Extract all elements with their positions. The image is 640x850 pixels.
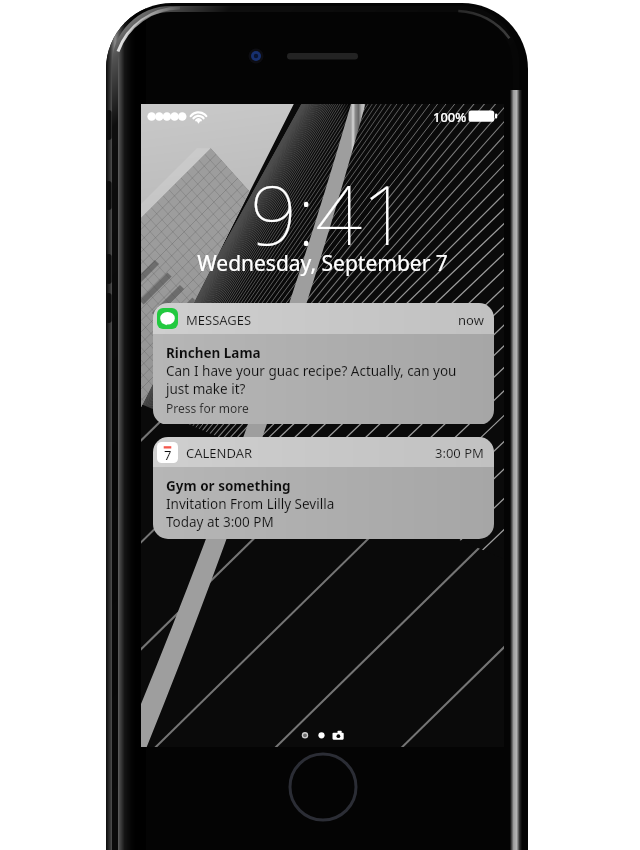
staticText: Invitation From Lilly Sevilla — [166, 495, 335, 513]
staticText: Rinchen Lama — [166, 344, 261, 362]
staticText: MESSAGES — [186, 311, 252, 329]
staticText: Today at 3:00 PM — [166, 513, 274, 531]
staticText: 3:00 PM — [435, 444, 484, 462]
staticText: now — [458, 311, 484, 329]
staticText: Can I have your guac recipe? Actually, c… — [166, 362, 457, 380]
staticText: 7 — [164, 446, 172, 464]
staticText: 100% — [433, 108, 467, 126]
staticText: CALENDAR — [186, 444, 253, 462]
staticText: Press for more — [166, 400, 249, 416]
staticText: Wednesday, September 7 — [141, 249, 504, 278]
button[interactable]: 7 — [153, 437, 494, 539]
staticText: 9:41 — [148, 157, 504, 269]
button[interactable]: MESSAGES — [153, 303, 494, 425]
staticText: Gym or something — [166, 477, 291, 495]
button[interactable]: Camera — [332, 728, 345, 743]
staticText: just make it? — [166, 380, 246, 398]
